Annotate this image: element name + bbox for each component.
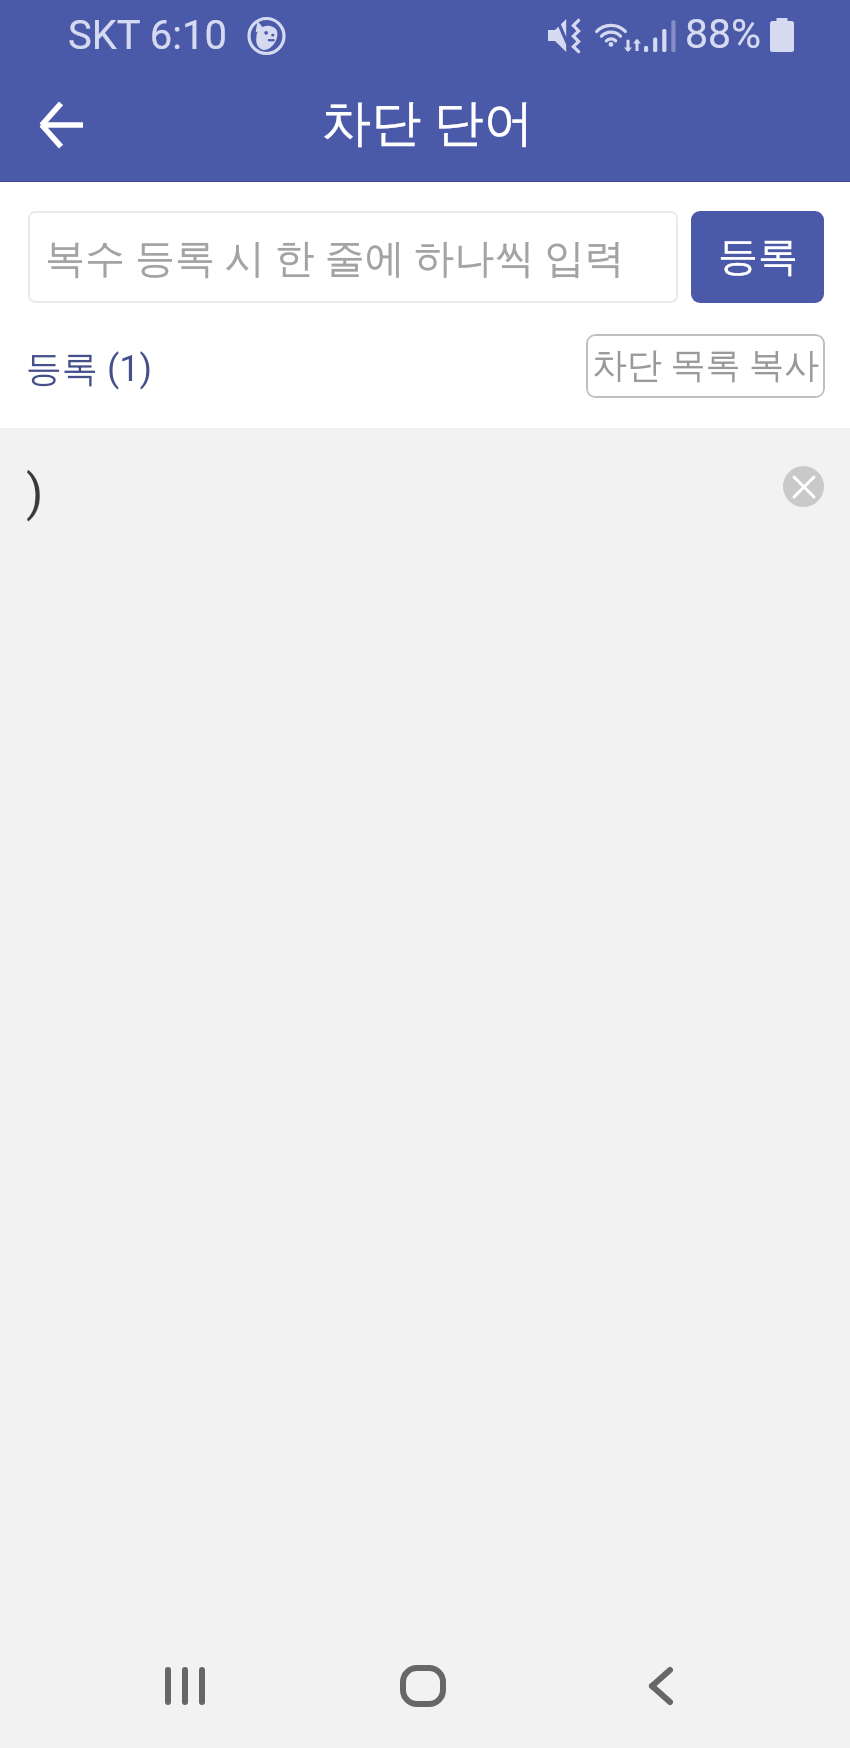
staticText: 등록 — [718, 231, 798, 281]
staticText: 복수 등록 시 한 줄에 하나씩 입력 — [45, 233, 625, 283]
button[interactable]: Recent apps — [140, 1641, 230, 1731]
button[interactable]: 복수 등록 시 한 줄에 하나씩 입력 — [28, 211, 678, 303]
button[interactable]: 차단 목록 복사 — [586, 334, 825, 398]
staticText: 88% — [685, 10, 762, 58]
button[interactable]: Delete — [783, 466, 824, 507]
staticText: ) — [26, 464, 44, 523]
button[interactable]: Back — [18, 82, 104, 168]
staticText: 등록 (1) — [26, 346, 153, 391]
button[interactable]: 등록 — [691, 211, 824, 303]
staticText: 차단 목록 복사 — [592, 343, 820, 387]
staticText: 차단 단어 — [321, 92, 534, 155]
button[interactable]: Back — [616, 1641, 706, 1731]
staticText: SKT 6:10 — [68, 12, 227, 59]
button[interactable]: Home — [378, 1641, 468, 1731]
button[interactable]: ) — [0, 428, 850, 558]
